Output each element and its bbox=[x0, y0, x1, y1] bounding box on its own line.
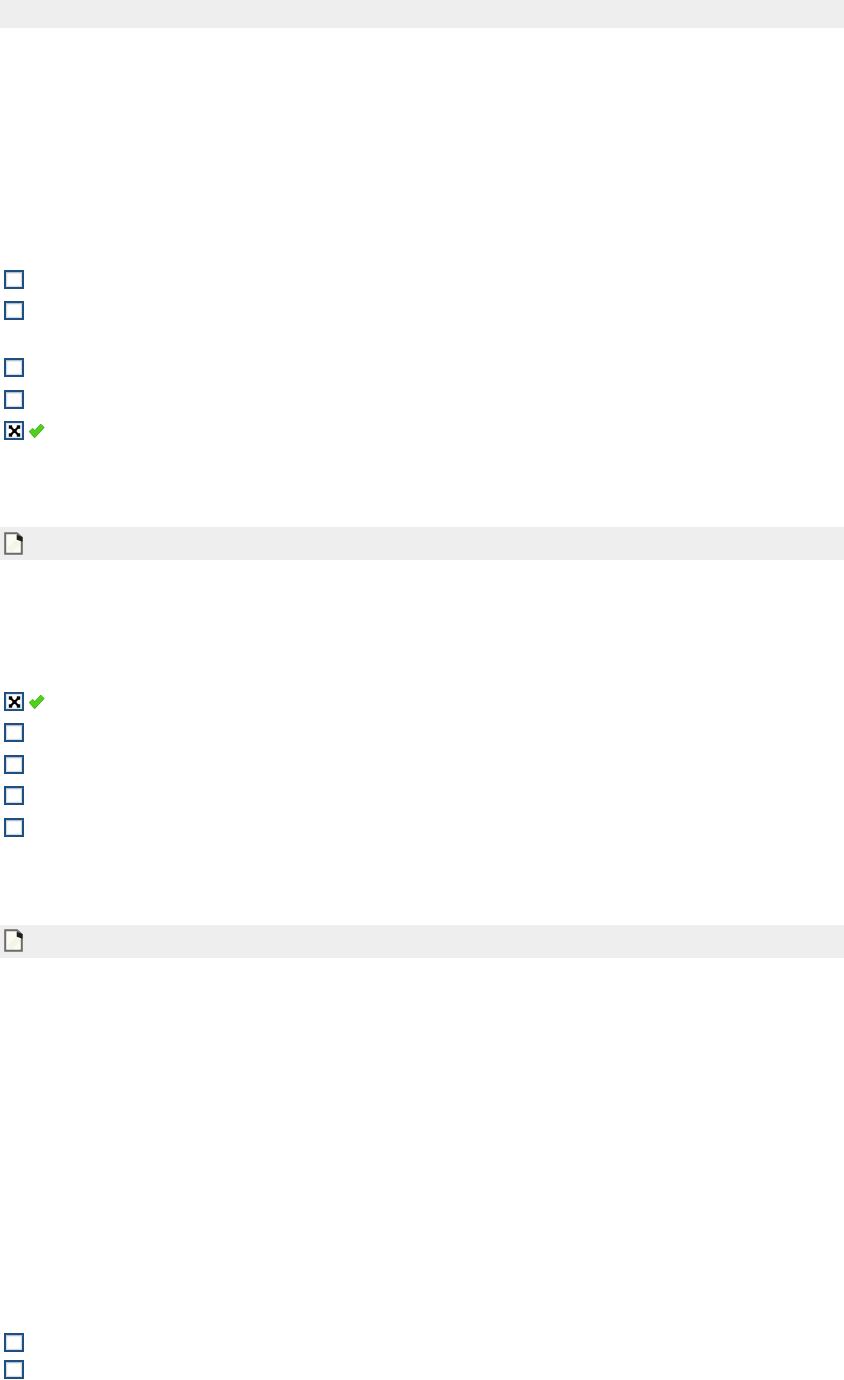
button[interactable]: Document bbox=[4, 929, 23, 952]
button[interactable]: Checkbox bbox=[4, 358, 25, 378]
button[interactable]: Checkbox bbox=[4, 1360, 25, 1380]
button[interactable]: Checkbox bbox=[4, 1333, 25, 1353]
button[interactable]: Broken image placeholder bbox=[4, 692, 25, 712]
button[interactable]: Checkbox bbox=[4, 390, 25, 410]
button[interactable]: Verified bbox=[28, 694, 45, 709]
button[interactable]: Checkbox bbox=[4, 818, 25, 838]
button[interactable]: Verified bbox=[28, 423, 45, 438]
button[interactable]: Document bbox=[0, 925, 844, 958]
button[interactable]: Checkbox bbox=[4, 270, 25, 290]
button[interactable]: Checkbox bbox=[4, 723, 25, 743]
button[interactable]: Checkbox bbox=[4, 301, 25, 321]
button[interactable]: Checkbox bbox=[4, 786, 25, 806]
button[interactable]: Broken image placeholder bbox=[4, 421, 25, 441]
button[interactable]: Document bbox=[0, 527, 844, 560]
button[interactable]: Document bbox=[4, 532, 23, 555]
button[interactable]: Checkbox bbox=[4, 755, 25, 775]
